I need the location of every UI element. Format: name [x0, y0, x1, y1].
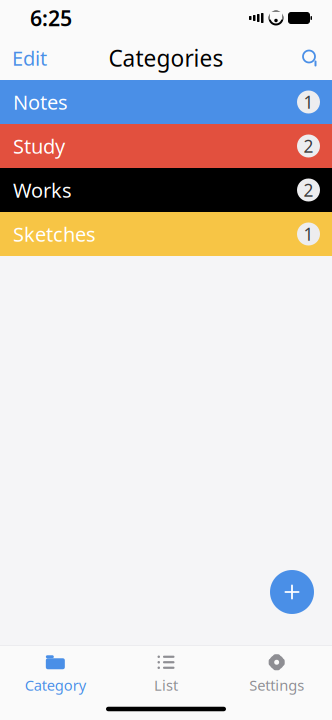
button[interactable]: Search — [289, 36, 332, 80]
staticText: Categories — [108, 43, 223, 73]
staticText: Edit — [12, 45, 47, 71]
button[interactable]: Settings — [221, 652, 332, 696]
button[interactable]: Works — [0, 168, 332, 212]
button[interactable]: Notes — [0, 80, 332, 124]
staticText: Notes — [13, 89, 68, 115]
staticText: 6:25 — [30, 4, 72, 32]
staticText: Study — [13, 133, 65, 159]
button[interactable]: Study — [0, 124, 332, 168]
staticText: 1 — [303, 222, 313, 245]
button[interactable]: Edit — [0, 36, 59, 80]
staticText: Sketches — [13, 221, 96, 247]
staticText: 1 — [303, 90, 313, 113]
button[interactable]: List — [111, 652, 221, 696]
staticText: 2 — [303, 178, 313, 201]
staticText: List — [154, 675, 178, 695]
staticText: Works — [13, 177, 72, 203]
button[interactable]: Category — [0, 652, 111, 696]
staticText: Category — [25, 675, 86, 695]
button[interactable]: Sketches — [0, 212, 332, 256]
button[interactable]: Add category — [270, 570, 314, 614]
staticText: 2 — [303, 134, 313, 157]
staticText: Settings — [249, 675, 304, 695]
